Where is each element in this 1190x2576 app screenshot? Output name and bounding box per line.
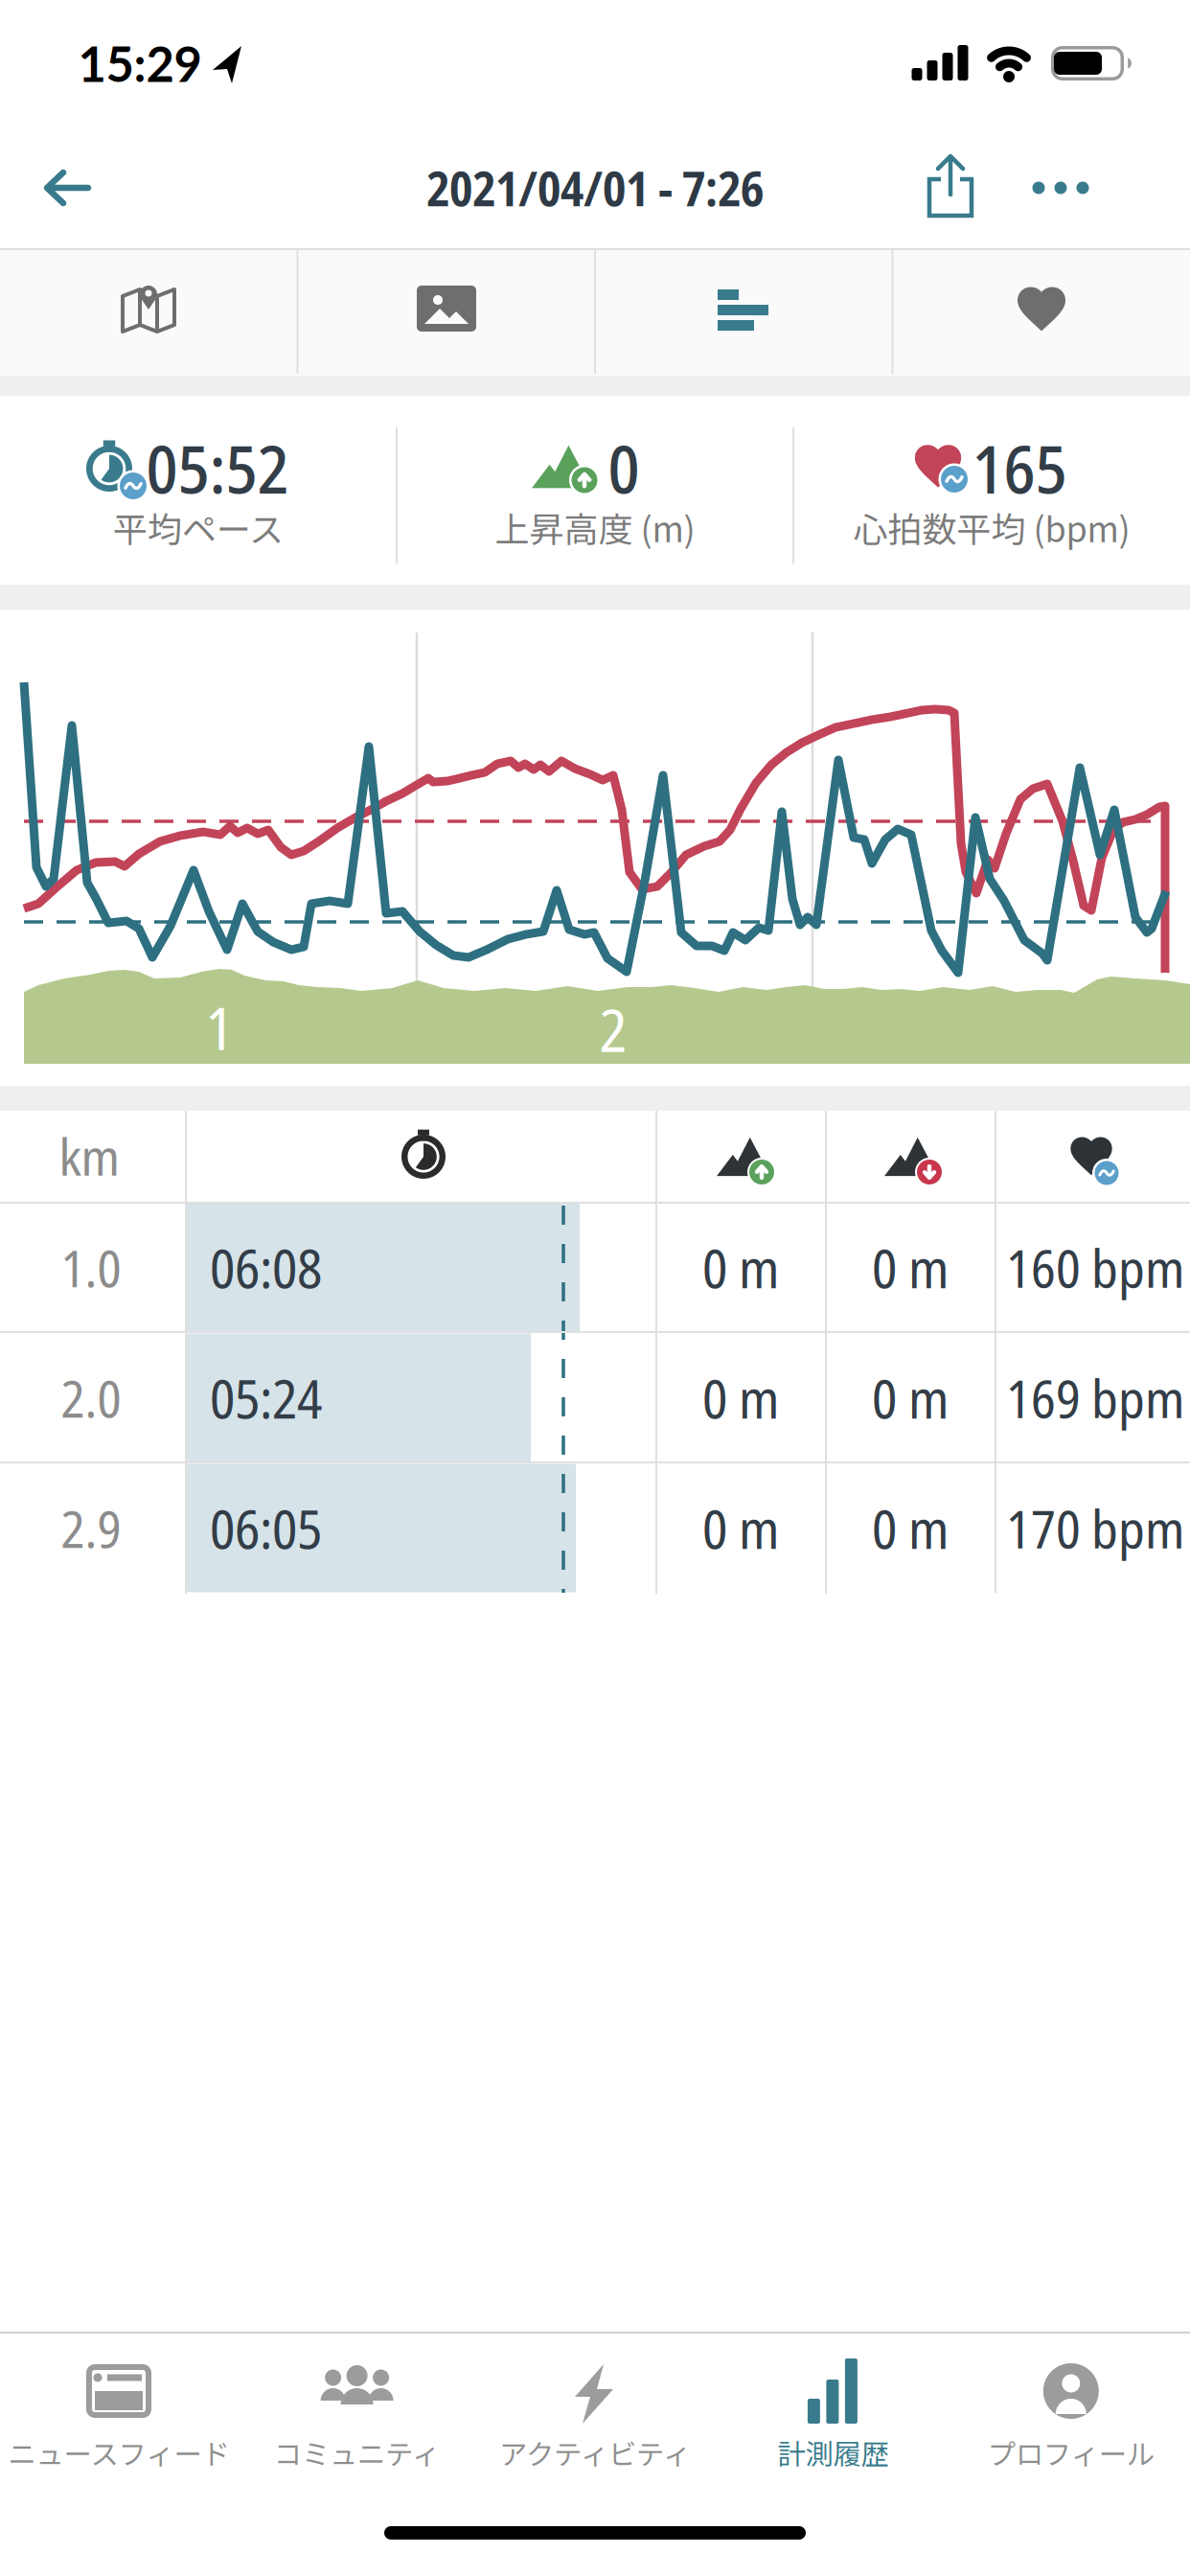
staticText: 2 <box>599 989 627 1069</box>
staticText: 1.0 <box>61 1233 121 1302</box>
staticText: ニュースフィード <box>8 2432 229 2473</box>
button[interactable]: プロフィール <box>952 2332 1190 2495</box>
button[interactable]: Share <box>927 154 973 218</box>
staticText: 2021/04/01 - 7:26 <box>426 156 764 220</box>
staticText: 06:08 <box>210 1231 322 1304</box>
staticText: 平均ペース <box>113 502 284 552</box>
staticText: 160 bpm <box>1006 1232 1184 1303</box>
staticText: 170 bpm <box>1006 1492 1184 1564</box>
staticText: 0 m <box>872 1231 949 1304</box>
button[interactable]: 計測履歴 <box>714 2332 952 2495</box>
button[interactable]: Back <box>40 171 94 205</box>
button[interactable]: Charts <box>718 287 769 330</box>
staticText: 15:29 <box>78 34 202 92</box>
staticText: 2.0 <box>61 1363 121 1433</box>
staticText: アクティビティ <box>499 2432 691 2473</box>
staticText: 0 m <box>872 1361 949 1434</box>
staticText: 心拍数平均 (bpm) <box>853 502 1130 552</box>
button[interactable]: Map <box>119 281 178 336</box>
button[interactable]: Photos <box>417 286 476 332</box>
button[interactable]: More <box>1022 167 1099 209</box>
button[interactable]: アクティビティ <box>476 2332 714 2495</box>
staticText: 0 m <box>702 1361 779 1434</box>
button[interactable]: コミュニティ <box>238 2332 476 2495</box>
staticText: 06:05 <box>210 1492 322 1565</box>
staticText: 1 <box>206 987 233 1067</box>
staticText: km <box>59 1121 119 1191</box>
staticText: 0 m <box>872 1492 949 1565</box>
staticText: 05:24 <box>210 1361 322 1434</box>
staticText: 0 <box>608 422 640 513</box>
staticText: 2.9 <box>61 1493 121 1563</box>
staticText: 0 m <box>702 1231 779 1304</box>
staticText: 0 m <box>702 1492 779 1565</box>
staticText: 05:52 <box>146 422 289 513</box>
staticText: プロフィール <box>988 2432 1154 2473</box>
button[interactable]: Heart rate <box>1015 284 1068 333</box>
staticText: 169 bpm <box>1006 1362 1184 1433</box>
staticText: 計測履歴 <box>777 2432 889 2473</box>
button[interactable]: ニュースフィード <box>0 2332 238 2495</box>
staticText: 165 <box>972 422 1067 513</box>
staticText: 上昇高度 (m) <box>495 502 695 552</box>
staticText: コミュニティ <box>274 2432 440 2473</box>
